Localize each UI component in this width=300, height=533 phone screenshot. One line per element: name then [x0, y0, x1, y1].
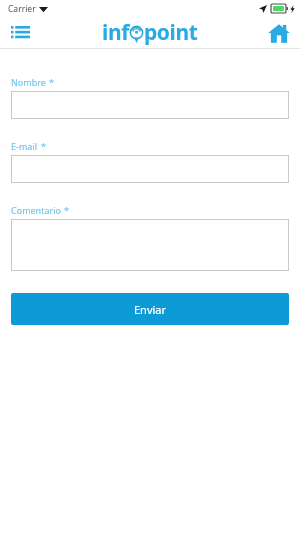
staticText: *: [64, 204, 69, 216]
staticText: E-mail: [11, 140, 38, 152]
staticText: *: [49, 76, 54, 88]
staticText: Carrier: [8, 3, 36, 15]
staticText: *: [41, 140, 46, 152]
button[interactable]: Enviar: [11, 293, 289, 325]
button[interactable]: [11, 219, 289, 271]
staticText: point: [144, 18, 198, 47]
button[interactable]: Home: [265, 19, 293, 47]
staticText: Comentario: [11, 204, 61, 216]
staticText: inf: [102, 18, 129, 47]
button[interactable]: Menu: [6, 19, 34, 47]
staticText: Nombre: [11, 76, 46, 88]
staticText: Enviar: [134, 302, 167, 317]
button[interactable]: [11, 91, 289, 119]
button[interactable]: [11, 155, 289, 183]
